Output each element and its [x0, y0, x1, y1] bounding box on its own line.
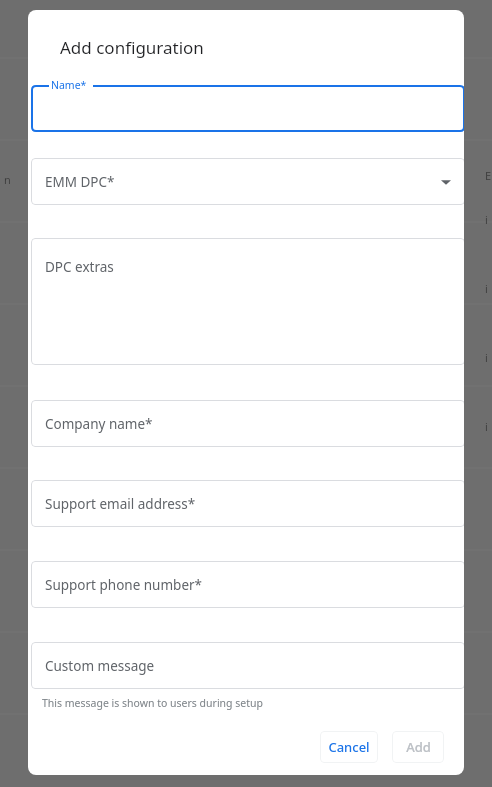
staticText: i — [485, 350, 488, 365]
button[interactable]: Support phone number* — [31, 561, 464, 608]
staticText: n — [4, 172, 11, 187]
button[interactable]: DPC extras — [31, 238, 464, 365]
staticText: i — [485, 419, 488, 434]
staticText: Add configuration — [60, 36, 204, 59]
staticText: Support email address* — [45, 495, 196, 513]
staticText: Add — [406, 738, 431, 756]
button[interactable]: Support email address* — [31, 480, 464, 527]
staticText: Company name* — [45, 415, 153, 433]
button[interactable]: Add — [392, 731, 444, 763]
staticText: E — [485, 168, 492, 183]
button[interactable]: Company name* — [31, 400, 464, 447]
staticText: Support phone number* — [45, 576, 203, 594]
staticText: Cancel — [328, 738, 370, 756]
staticText: i — [485, 281, 488, 296]
staticText: EMM DPC* — [45, 173, 115, 191]
button[interactable]: EMM DPC selector — [31, 158, 464, 205]
staticText: Name* — [51, 78, 87, 92]
staticText: This message is shown to users during se… — [42, 696, 263, 710]
button[interactable]: Custom message — [31, 642, 464, 689]
button[interactable]: Name* — [31, 75, 464, 132]
staticText: i — [485, 212, 488, 227]
staticText: DPC extras — [45, 258, 114, 276]
staticText: Custom message — [45, 657, 155, 675]
button[interactable]: Cancel — [320, 731, 378, 763]
